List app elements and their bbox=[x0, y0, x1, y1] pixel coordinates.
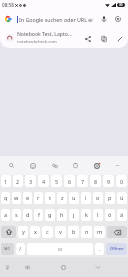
button[interactable]: t bbox=[45, 192, 55, 204]
button[interactable]: s bbox=[12, 209, 21, 221]
button[interactable]: j bbox=[69, 209, 79, 221]
staticText: ü bbox=[120, 194, 124, 202]
button[interactable]: Back bbox=[89, 258, 107, 276]
staticText: !#1 bbox=[4, 246, 11, 252]
button[interactable]: Edit query bbox=[113, 32, 126, 45]
staticText: Öffnen bbox=[110, 246, 124, 252]
staticText: q bbox=[4, 194, 8, 202]
button[interactable]: z bbox=[57, 192, 67, 204]
staticText: e bbox=[26, 194, 30, 202]
staticText: 9 bbox=[107, 178, 111, 185]
button[interactable]: l bbox=[93, 209, 103, 221]
staticText: 2 bbox=[16, 178, 20, 185]
button[interactable]: f bbox=[34, 209, 43, 221]
button[interactable]: g bbox=[45, 209, 55, 221]
button[interactable]: More options bbox=[107, 156, 128, 175]
button[interactable]: w bbox=[12, 192, 21, 204]
button[interactable]: 8 bbox=[90, 175, 101, 187]
button[interactable]: i bbox=[81, 192, 91, 204]
staticText: 5 bbox=[55, 178, 59, 185]
button[interactable]: n bbox=[81, 226, 92, 238]
button[interactable]: u bbox=[69, 192, 79, 204]
button[interactable]: Voice search bbox=[97, 12, 111, 26]
staticText: o bbox=[96, 194, 100, 202]
button[interactable]: k bbox=[81, 209, 91, 221]
staticText: m bbox=[97, 228, 103, 236]
button[interactable]: 6 bbox=[64, 175, 75, 187]
button[interactable]: m bbox=[94, 226, 105, 238]
staticText: x bbox=[34, 228, 37, 236]
button[interactable]: 0 bbox=[116, 175, 127, 187]
button[interactable]: h bbox=[57, 209, 67, 221]
button[interactable]: d bbox=[23, 209, 32, 221]
staticText: 8 bbox=[94, 178, 98, 185]
button[interactable]: e bbox=[23, 192, 32, 204]
button[interactable]: 4 bbox=[38, 175, 49, 187]
button[interactable]: Öffnen bbox=[106, 243, 127, 255]
button[interactable]: ü bbox=[117, 192, 127, 204]
button[interactable]: Search engine bbox=[0, 11, 16, 27]
staticText: In Google suchen oder URL ei bbox=[19, 16, 93, 23]
button[interactable]: o bbox=[93, 192, 103, 204]
staticText: h bbox=[60, 211, 64, 219]
staticText: d bbox=[26, 211, 30, 219]
button[interactable]: . bbox=[95, 243, 104, 255]
button[interactable]: 3 bbox=[25, 175, 36, 187]
staticText: f bbox=[38, 211, 40, 219]
button[interactable]: Google Lens bbox=[111, 12, 125, 26]
button[interactable]: v bbox=[55, 226, 66, 238]
button[interactable]: x bbox=[30, 226, 40, 238]
staticText: s bbox=[15, 211, 18, 219]
button[interactable]: Share bbox=[81, 32, 94, 45]
button[interactable]: 1 bbox=[1, 175, 11, 187]
button[interactable]: !#1 bbox=[1, 243, 14, 255]
staticText: DE bbox=[58, 247, 63, 252]
staticText: i bbox=[85, 194, 87, 202]
button[interactable]: 5 bbox=[51, 175, 62, 187]
staticText: g bbox=[48, 211, 52, 219]
staticText: 1 bbox=[4, 178, 8, 185]
button[interactable]: / bbox=[16, 243, 25, 255]
button[interactable]: a bbox=[1, 209, 10, 221]
button[interactable]: Copy link bbox=[97, 32, 110, 45]
button[interactable]: Hide keyboard bbox=[0, 258, 16, 276]
button[interactable]: y bbox=[18, 226, 28, 238]
button[interactable]: 9 bbox=[103, 175, 114, 187]
button[interactable]: Clipboard bbox=[65, 156, 86, 175]
button[interactable]: Emoji bbox=[22, 156, 44, 175]
staticText: l bbox=[97, 211, 99, 219]
staticText: ä bbox=[120, 211, 124, 219]
button[interactable]: Backspace bbox=[107, 226, 127, 238]
button[interactable]: q bbox=[1, 192, 10, 204]
staticText: 7 bbox=[81, 178, 85, 185]
staticText: 6 bbox=[68, 178, 72, 185]
button[interactable]: r bbox=[34, 192, 43, 204]
button[interactable]: 7 bbox=[77, 175, 88, 187]
button[interactable]: c bbox=[42, 226, 53, 238]
staticText: w bbox=[14, 194, 19, 202]
button[interactable]: Home bbox=[54, 258, 72, 276]
staticText: 08:58 bbox=[2, 2, 14, 8]
staticText: z bbox=[61, 194, 64, 202]
button[interactable]: Notebook Test, Lapto… bbox=[0, 28, 128, 48]
button[interactable]: Space bbox=[27, 243, 93, 255]
button[interactable]: ä bbox=[117, 209, 127, 221]
staticText: k bbox=[85, 211, 88, 219]
button[interactable]: Keyboard settings bbox=[86, 156, 107, 175]
button[interactable]: Switch keyboard bbox=[18, 258, 36, 276]
staticText: v bbox=[59, 228, 62, 236]
button[interactable]: Search bbox=[0, 156, 22, 175]
staticText: n bbox=[85, 228, 89, 236]
staticText: j bbox=[73, 211, 75, 219]
button[interactable]: ö bbox=[105, 209, 115, 221]
button[interactable]: p bbox=[105, 192, 115, 204]
button[interactable]: Stickers bbox=[44, 156, 65, 175]
staticText: r bbox=[37, 194, 40, 202]
button[interactable]: b bbox=[68, 226, 79, 238]
staticText: / bbox=[19, 245, 22, 253]
staticText: Notebook Test, Lapto… bbox=[17, 31, 72, 38]
button[interactable]: 2 bbox=[13, 175, 23, 187]
staticText: b bbox=[72, 228, 76, 236]
staticText: y bbox=[22, 228, 25, 236]
button[interactable]: Shift bbox=[1, 226, 16, 238]
